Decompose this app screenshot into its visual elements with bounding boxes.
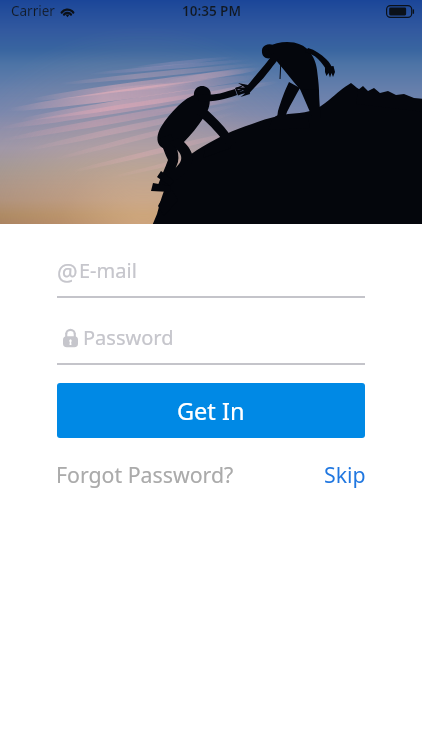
staticText: Carrier: [11, 2, 55, 20]
staticText: Skip: [324, 460, 366, 489]
button[interactable]: Skip: [324, 460, 366, 489]
button[interactable]: Forgot Password?: [56, 460, 234, 489]
staticText: Forgot Password?: [56, 460, 234, 489]
button[interactable]: @: [57, 255, 365, 298]
button[interactable]: Password: [57, 322, 365, 365]
button[interactable]: Get In: [57, 383, 365, 438]
staticText: 10:35 PM: [182, 2, 241, 20]
staticText: @: [57, 256, 78, 287]
staticText: E-mail: [79, 257, 137, 284]
staticText: Get In: [177, 395, 245, 427]
staticText: Password: [83, 324, 174, 351]
